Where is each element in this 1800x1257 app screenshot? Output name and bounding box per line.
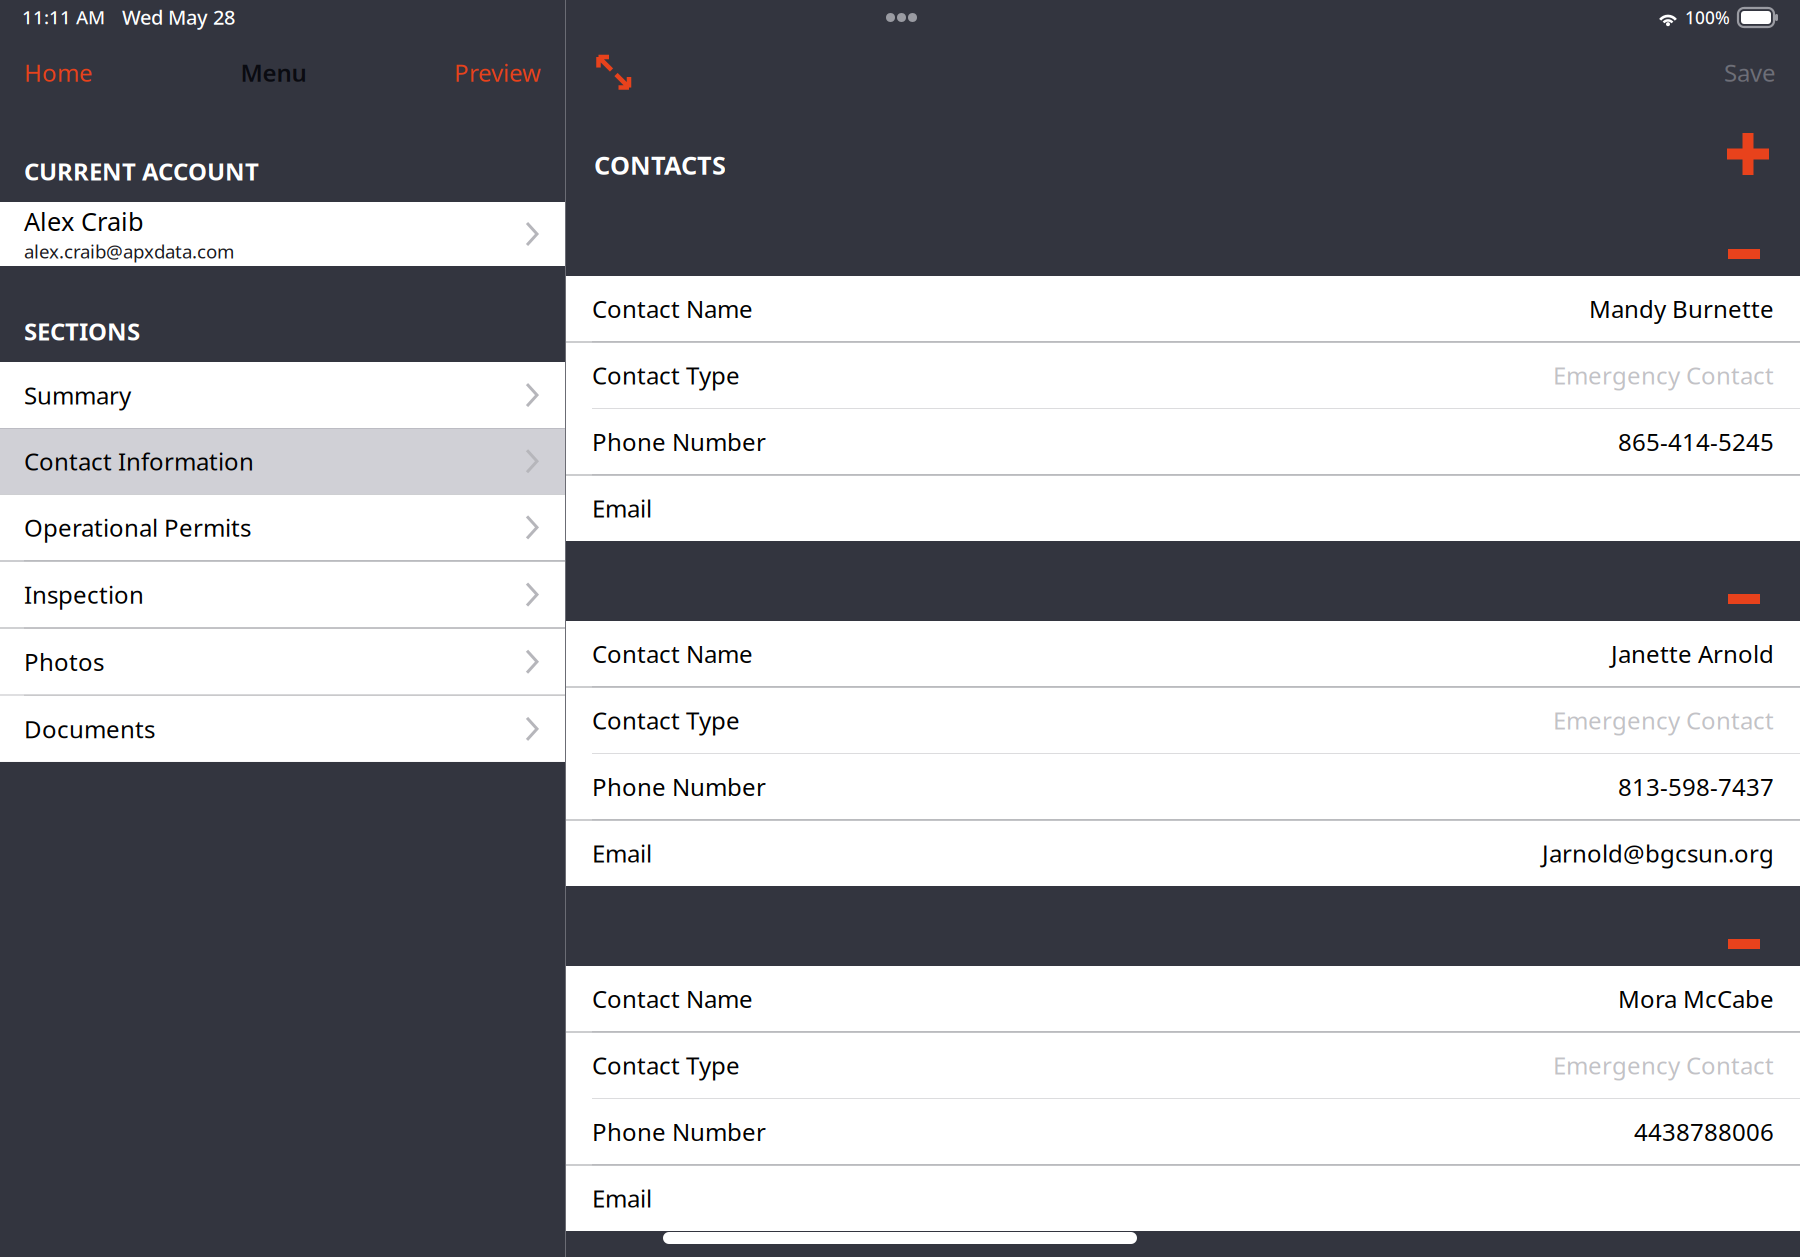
staticText: Contact Name <box>592 293 753 325</box>
button[interactable]: Add contact <box>1725 131 1800 177</box>
staticText: Emergency Contact <box>1553 359 1774 391</box>
staticText: CURRENT ACCOUNT <box>24 155 259 187</box>
button[interactable]: Preview <box>440 46 565 99</box>
button[interactable]: Email <box>566 475 1800 541</box>
staticText: Summary <box>24 379 131 411</box>
button[interactable]: Operational Permits <box>0 494 565 560</box>
staticText: Jarnold@bgcsun.org <box>1542 837 1774 869</box>
button[interactable]: Contact Name <box>566 966 1800 1031</box>
staticText: 865-414-5245 <box>1618 426 1774 458</box>
staticText: Email <box>592 1182 652 1214</box>
button[interactable]: Contact Name <box>566 621 1800 686</box>
button[interactable]: Contact Type <box>566 342 1800 408</box>
staticText: Preview <box>454 57 541 88</box>
staticText: alex.craib@apxdata.com <box>24 239 234 264</box>
button[interactable]: Remove contact <box>1708 239 1800 269</box>
staticText: 4438788006 <box>1634 1116 1774 1148</box>
button[interactable]: Phone Number <box>566 754 1800 819</box>
button[interactable]: Phone Number <box>566 1099 1800 1164</box>
staticText: Operational Permits <box>24 511 251 543</box>
staticText: SECTIONS <box>24 315 140 347</box>
staticText: 813-598-7437 <box>1618 771 1774 803</box>
staticText: Contact Name <box>592 638 753 670</box>
button[interactable]: Photos <box>0 629 565 695</box>
staticText: Mora McCabe <box>1618 983 1774 1015</box>
button[interactable]: Contact Type <box>566 687 1800 753</box>
button[interactable]: Email <box>566 1165 1800 1231</box>
button[interactable]: Save <box>1710 46 1800 99</box>
staticText: Inspection <box>24 579 144 610</box>
button[interactable]: Alex Craib <box>0 202 565 266</box>
staticText: Home <box>24 57 93 88</box>
button[interactable]: Email <box>566 820 1800 886</box>
staticText: 11:11 AM <box>22 5 105 29</box>
button[interactable]: Collapse sidebar <box>566 46 648 98</box>
staticText: Contact Type <box>592 1049 740 1081</box>
staticText: Wed May 28 <box>122 4 235 30</box>
button[interactable]: Phone Number <box>566 409 1800 474</box>
staticText: Emergency Contact <box>1553 704 1774 736</box>
staticText: Phone Number <box>592 426 766 458</box>
staticText: CONTACTS <box>594 148 726 182</box>
staticText: Email <box>592 837 652 869</box>
staticText: Mandy Burnette <box>1589 293 1774 325</box>
button[interactable]: Remove contact <box>1708 929 1800 959</box>
staticText: Contact Type <box>592 704 740 736</box>
staticText: Menu <box>240 57 306 88</box>
button[interactable]: Contact Type <box>566 1032 1800 1098</box>
button[interactable]: Summary <box>0 362 565 428</box>
staticText: Save <box>1724 57 1776 88</box>
button[interactable]: Contact Name <box>566 276 1800 341</box>
staticText: Janette Arnold <box>1611 638 1774 670</box>
button[interactable]: Contact Information <box>0 428 565 494</box>
staticText: Contact Type <box>592 359 740 391</box>
staticText: Phone Number <box>592 771 766 803</box>
staticText: Email <box>592 492 652 524</box>
staticText: Emergency Contact <box>1553 1049 1774 1081</box>
button[interactable]: Remove contact <box>1708 584 1800 614</box>
staticText: Phone Number <box>592 1116 766 1148</box>
button[interactable]: Documents <box>0 696 565 762</box>
button[interactable]: Home <box>0 46 107 99</box>
staticText: Photos <box>24 646 104 678</box>
staticText: Documents <box>24 713 155 745</box>
staticText: Alex Craib <box>24 204 144 238</box>
staticText: Contact Name <box>592 983 753 1015</box>
staticText: Contact Information <box>24 445 254 477</box>
staticText: 100% <box>1685 6 1730 29</box>
button[interactable]: Inspection <box>0 561 565 628</box>
